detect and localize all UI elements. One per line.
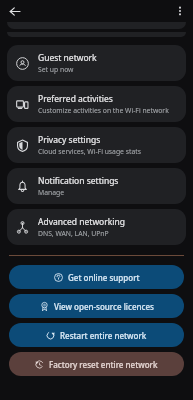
staticText: Preferred activities xyxy=(38,93,113,105)
staticText: Manage xyxy=(38,188,65,197)
button[interactable]: More options xyxy=(171,2,189,20)
button[interactable]: Get online support xyxy=(9,265,184,289)
staticText: DNS, WAN, LAN, UPnP xyxy=(38,229,109,238)
button[interactable]: Back xyxy=(5,2,23,20)
staticText: Guest network xyxy=(38,52,97,64)
staticText: Restart entire network xyxy=(60,330,147,341)
button[interactable]: Restart entire network xyxy=(9,323,184,347)
staticText: Advanced networking xyxy=(38,216,125,228)
button[interactable]: Factory reset entire network xyxy=(9,352,184,376)
button[interactable]: Advanced networking xyxy=(7,209,186,245)
staticText: Customize activities on the Wi-Fi networ… xyxy=(38,106,169,115)
button[interactable]: Privacy settings xyxy=(7,127,186,163)
button[interactable]: Preferred activities xyxy=(7,86,186,122)
staticText: Privacy settings xyxy=(38,134,101,146)
staticText: Cloud services, Wi-Fi usage stats xyxy=(38,147,141,156)
button[interactable]: Notification settings xyxy=(7,168,186,204)
staticText: Factory reset entire network xyxy=(49,359,158,370)
staticText: Get online support xyxy=(68,272,140,283)
staticText: Set up now xyxy=(38,65,74,74)
button[interactable]: View open-source licences xyxy=(9,294,184,318)
staticText: Notification settings xyxy=(38,175,119,187)
staticText: View open-source licences xyxy=(54,301,154,312)
button[interactable]: Guest network xyxy=(7,45,186,81)
